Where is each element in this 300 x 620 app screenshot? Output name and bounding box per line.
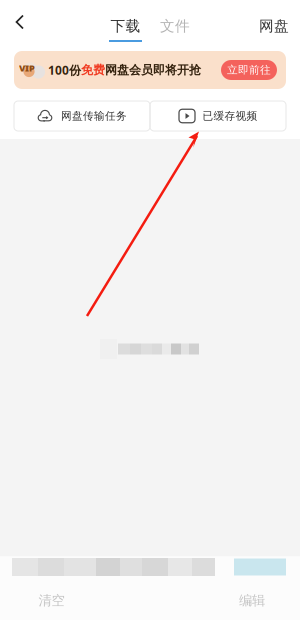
button[interactable]: 网盘传输任务: [14, 101, 150, 131]
staticText: 清空: [38, 592, 64, 609]
button[interactable]: 清空: [0, 581, 103, 620]
staticText: 100份: [48, 62, 81, 78]
staticText: 文件: [160, 17, 190, 35]
staticText: 已缓存视频: [202, 109, 257, 122]
button[interactable]: 已缓存视频: [150, 101, 286, 131]
staticText: 网盘会员即将开抢: [105, 63, 201, 77]
button[interactable]: 下载: [109, 0, 142, 44]
staticText: 立即前往: [227, 63, 271, 76]
button[interactable]: VIP: [0, 51, 300, 89]
staticText: 编辑: [239, 592, 265, 609]
button[interactable]: 网盘: [259, 0, 300, 44]
staticText: 免费: [81, 63, 105, 77]
button[interactable]: 编辑: [204, 581, 300, 620]
button[interactable]: 文件: [142, 0, 190, 44]
staticText: 下载: [110, 17, 140, 35]
staticText: 网盘: [259, 17, 289, 35]
staticText: 网盘传输任务: [61, 109, 127, 122]
staticText: VIP: [19, 62, 35, 74]
button[interactable]: Back: [0, 0, 40, 44]
